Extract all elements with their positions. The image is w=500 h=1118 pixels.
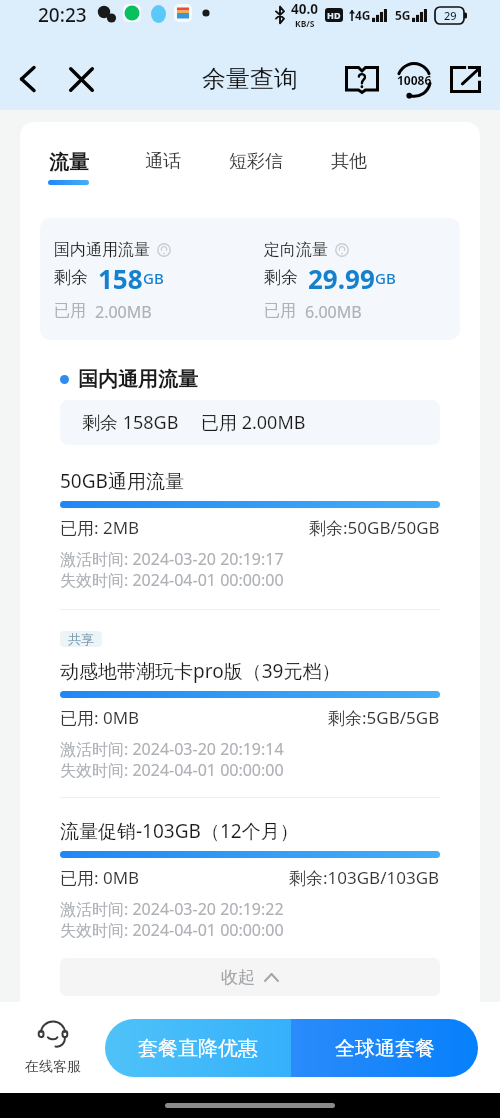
button[interactable]: 全球通套餐: [291, 1019, 478, 1077]
staticText: 定向流量: [264, 240, 328, 260]
staticText: 在线客服: [25, 1058, 81, 1076]
staticText: 158: [98, 261, 143, 296]
staticText: 2.00MB: [95, 301, 152, 323]
staticText: 国内通用流量: [78, 367, 198, 392]
button[interactable]: 套餐直降优惠: [105, 1019, 291, 1077]
staticText: GB: [375, 268, 396, 288]
staticText: 已用: 0MB: [60, 706, 140, 729]
staticText: 通话: [145, 150, 181, 173]
button[interactable]: 短彩信: [229, 150, 283, 173]
staticText: 全球通套餐: [335, 1036, 435, 1061]
button[interactable]: Share: [444, 58, 487, 101]
staticText: 20:23: [38, 2, 87, 28]
button[interactable]: 其他: [331, 150, 367, 173]
staticText: 已用: [264, 301, 296, 321]
staticText: 流量: [49, 150, 89, 175]
staticText: KB/S: [295, 18, 315, 30]
button[interactable]: Help: [340, 58, 383, 101]
staticText: 国内通用流量: [54, 240, 150, 260]
button[interactable]: Close: [63, 61, 99, 97]
button[interactable]: Call 10086 service: [392, 58, 435, 101]
staticText: 剩余:103GB/103GB: [289, 866, 440, 889]
staticText: 收起: [221, 967, 255, 988]
button[interactable]: 通话: [145, 150, 181, 173]
staticText: 共享: [68, 631, 94, 647]
staticText: 5G: [395, 7, 411, 23]
staticText: 剩余:50GB/50GB: [309, 516, 440, 539]
button[interactable]: Online customer service: [0, 1020, 105, 1076]
staticText: 流量促销-103GB（12个月）: [60, 818, 299, 844]
staticText: HD: [327, 9, 341, 21]
staticText: 已用: [54, 301, 86, 321]
staticText: 已用: 2MB: [60, 516, 140, 539]
staticText: 50GB通用流量: [60, 468, 184, 494]
staticText: 短彩信: [229, 150, 283, 173]
staticText: 剩余 158GB: [82, 410, 179, 435]
staticText: 动感地带潮玩卡pro版（39元档）: [60, 658, 341, 684]
staticText: 激活时间: 2024-03-20 20:19:17 失效时间: 2024-04-…: [60, 548, 284, 591]
staticText: 40.0: [291, 0, 318, 18]
staticText: 已用: 0MB: [60, 866, 140, 889]
staticText: 激活时间: 2024-03-20 20:19:22 失效时间: 2024-04-…: [60, 898, 284, 941]
staticText: 已用 2.00MB: [201, 410, 306, 435]
staticText: GB: [143, 268, 164, 288]
button[interactable]: 收起: [60, 958, 440, 996]
staticText: 套餐直降优惠: [138, 1036, 258, 1061]
staticText: 余量查询: [202, 64, 298, 94]
button[interactable]: Back: [9, 61, 45, 97]
staticText: 29.99: [308, 261, 375, 296]
staticText: 6.00MB: [305, 301, 362, 323]
staticText: 4G: [355, 7, 371, 23]
staticText: 10086: [397, 72, 432, 88]
staticText: 29: [444, 8, 457, 23]
staticText: 剩余: [264, 267, 298, 288]
staticText: 剩余: [54, 267, 88, 288]
staticText: 剩余:5GB/5GB: [328, 706, 440, 729]
staticText: 其他: [331, 150, 367, 173]
button[interactable]: 流量: [49, 150, 89, 175]
staticText: 激活时间: 2024-03-20 20:19:14 失效时间: 2024-04-…: [60, 738, 284, 781]
